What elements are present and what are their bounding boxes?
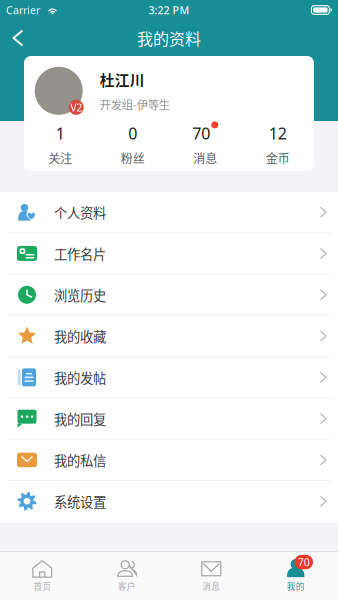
button[interactable]: 我的 (253, 552, 338, 600)
staticText: 12 (269, 122, 287, 144)
staticText: 粉丝 (121, 149, 145, 167)
button[interactable]: 1 (24, 118, 96, 171)
staticText: 金币 (266, 149, 290, 167)
button[interactable]: 个人资料 (0, 192, 338, 233)
button[interactable]: 工作名片 (0, 233, 338, 275)
button[interactable]: 我的回复 (0, 398, 338, 440)
staticText: 3:22 PM (148, 3, 189, 17)
staticText: 1 (56, 122, 65, 144)
button[interactable]: 系统设置 (0, 481, 338, 522)
staticText: 我的回复 (54, 409, 106, 428)
staticText: 系统设置 (54, 492, 106, 511)
button[interactable]: 消息 (169, 552, 253, 600)
staticText: 工作名片 (54, 244, 106, 263)
staticText: 我的资料 (137, 26, 201, 50)
button[interactable]: 首页 (0, 552, 84, 600)
staticText: 我的私信 (54, 450, 106, 470)
button[interactable]: 12 (241, 118, 314, 171)
staticText: 我的收藏 (54, 326, 106, 346)
button[interactable]: 客户 (84, 552, 169, 600)
staticText: 客户 (118, 580, 136, 592)
staticText: 个人资料 (54, 202, 106, 222)
button[interactable]: 70 (169, 118, 241, 171)
staticText: 消息 (193, 149, 217, 167)
button[interactable]: Back (0, 20, 36, 56)
button[interactable]: 我的收藏 (0, 316, 338, 357)
staticText: 70 (298, 555, 310, 569)
staticText: 关注 (48, 149, 72, 167)
staticText: 我的 (287, 580, 305, 592)
staticText: 消息 (202, 580, 220, 592)
staticText: 浏览历史 (54, 285, 106, 304)
staticText: 我的发帖 (54, 368, 106, 387)
staticText: 0 (128, 122, 137, 144)
button[interactable]: 浏览历史 (0, 275, 338, 316)
button[interactable]: 我的私信 (0, 440, 338, 481)
staticText: 开发组-伊等生 (100, 96, 170, 113)
staticText: Carrier (6, 3, 40, 17)
button[interactable]: 0 (96, 118, 169, 171)
staticText: 杜江川 (100, 69, 145, 90)
staticText: 首页 (33, 580, 51, 592)
staticText: 70 (192, 122, 210, 144)
staticText: V2 (70, 100, 82, 114)
button[interactable]: 我的发帖 (0, 357, 338, 398)
